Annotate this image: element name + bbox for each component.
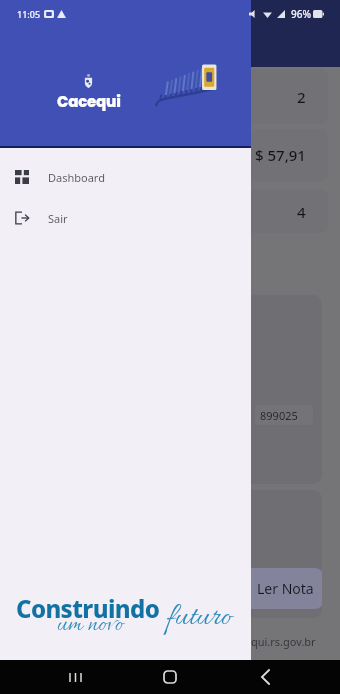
staticText: 899025 xyxy=(260,408,298,423)
staticText: Dashboard xyxy=(48,170,105,185)
staticText: 96% xyxy=(291,7,311,21)
staticText: 2 xyxy=(297,87,306,107)
staticText: Ler Nota xyxy=(257,579,314,598)
staticText: cacequi.rs.gov.br xyxy=(228,634,316,649)
staticText: futuro xyxy=(166,598,232,638)
button[interactable]: Recents xyxy=(55,660,95,694)
staticText: Sair xyxy=(48,211,68,226)
button[interactable]: Sair xyxy=(0,202,251,234)
staticText: Construindo xyxy=(16,592,160,625)
staticText: 11:05 xyxy=(17,8,41,20)
button[interactable]: Back xyxy=(245,660,285,694)
staticText: Cacequi xyxy=(57,91,121,112)
button[interactable]: Ler Nota xyxy=(226,568,322,609)
staticText: $ 57,91 xyxy=(255,145,306,165)
button[interactable]: 899025 xyxy=(255,405,313,425)
button[interactable]: Dashboard xyxy=(0,161,251,193)
button[interactable]: 4 xyxy=(12,190,328,233)
button[interactable]: 2 xyxy=(12,69,328,124)
button[interactable]: $ 57,91 xyxy=(12,129,328,181)
staticText: um novo xyxy=(57,610,124,641)
staticText: 4 xyxy=(297,202,306,222)
button[interactable]: Home xyxy=(150,660,190,694)
